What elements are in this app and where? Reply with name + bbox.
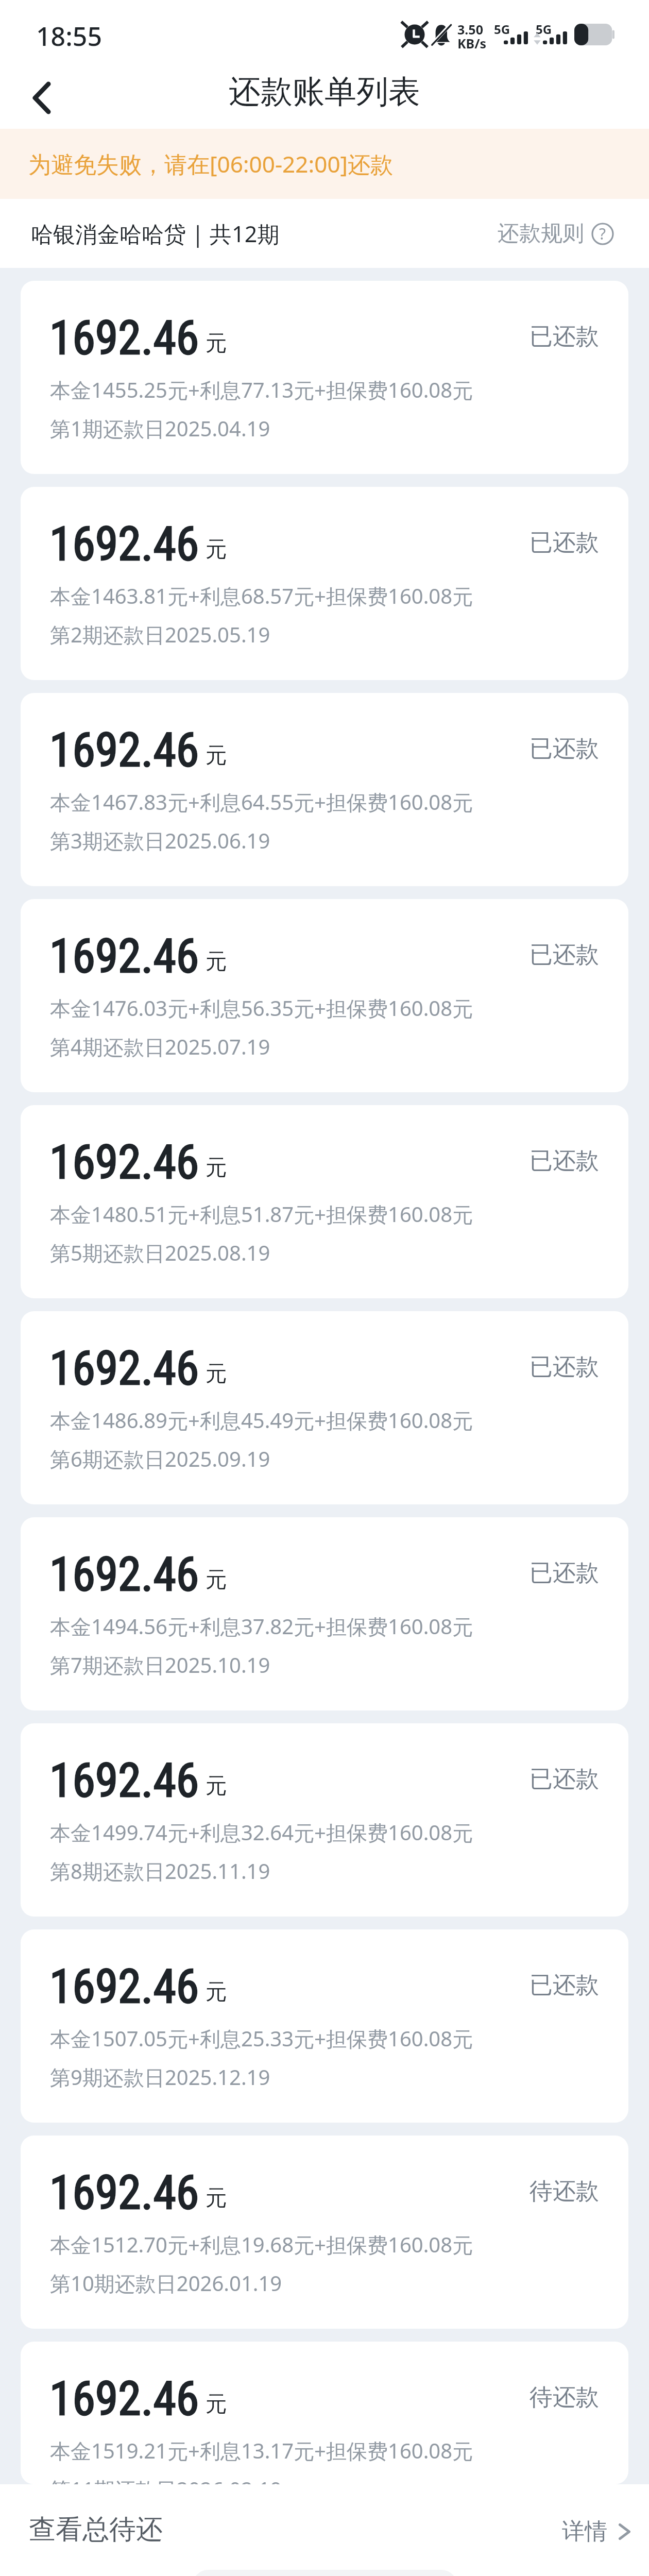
staticText: 已还款	[530, 1558, 599, 1588]
staticText: 本金1455.25元+利息77.13元+担保费160.08元	[50, 376, 473, 404]
staticText: 第8期还款日2025.11.19	[50, 1857, 270, 1885]
staticText: 已还款	[530, 1971, 599, 2000]
staticText: 本金1494.56元+利息37.82元+担保费160.08元	[50, 1612, 473, 1640]
staticText: 哈银消金哈哈贷 | 共12期	[31, 218, 280, 249]
staticText: 待还款	[530, 2177, 599, 2206]
staticText: 第3期还款日2025.06.19	[50, 826, 270, 855]
button[interactable]: 1692.46	[21, 2136, 628, 2329]
staticText: 本金1512.70元+利息19.68元+担保费160.08元	[50, 2230, 473, 2259]
staticText: 元	[206, 536, 227, 563]
staticText: 元	[206, 948, 227, 975]
staticText: 元	[206, 330, 227, 357]
staticText: 1692.46	[49, 1136, 199, 1190]
staticText: 已还款	[530, 1352, 599, 1382]
staticText: 第4期还款日2025.07.19	[50, 1032, 270, 1061]
staticText: 元	[206, 1360, 227, 1387]
button[interactable]: 1692.46	[21, 1929, 628, 2123]
staticText: ?	[599, 223, 606, 244]
staticText: 本金1507.05元+利息25.33元+担保费160.08元	[50, 2024, 473, 2053]
staticText: 1692.46	[49, 929, 199, 984]
button[interactable]: 1692.46	[21, 1517, 628, 1710]
staticText: 本金1467.83元+利息64.55元+担保费160.08元	[50, 788, 473, 816]
staticText: 第6期还款日2025.09.19	[50, 1445, 270, 1473]
button[interactable]: 1692.46	[21, 2342, 628, 2484]
button[interactable]: 1692.46	[21, 1105, 628, 1298]
button[interactable]: 1692.46	[21, 281, 628, 474]
staticText: 第9期还款日2025.12.19	[50, 2063, 270, 2091]
button[interactable]: 还款规则	[498, 220, 614, 247]
staticText: KB/s	[457, 35, 487, 52]
staticText: 还款规则	[498, 220, 584, 247]
button[interactable]: 1692.46	[21, 1311, 628, 1504]
button[interactable]: 1692.46	[21, 693, 628, 886]
button[interactable]: 1692.46	[21, 899, 628, 1092]
staticText: 5G	[494, 21, 510, 38]
staticText: 1692.46	[49, 517, 199, 571]
staticText: 第7期还款日2025.10.19	[50, 1651, 270, 1679]
staticText: 第10期还款日2026.01.19	[50, 2269, 282, 2297]
staticText: 1692.46	[49, 1548, 199, 1602]
staticText: 元	[206, 2184, 227, 2212]
staticText: 1692.46	[49, 1342, 199, 1396]
button[interactable]: 查看总待还	[21, 2507, 171, 2552]
staticText: 本金1480.51元+利息51.87元+担保费160.08元	[50, 1200, 473, 1228]
button[interactable]: Back	[19, 75, 65, 121]
staticText: 5G	[536, 21, 552, 38]
staticText: 待还款	[530, 2383, 599, 2412]
staticText: 3.50	[457, 21, 483, 38]
button[interactable]: 详情	[558, 2513, 635, 2550]
staticText: 元	[206, 1772, 227, 1800]
staticText: 元	[206, 742, 227, 769]
staticText: 本金1476.03元+利息56.35元+担保费160.08元	[50, 994, 473, 1022]
staticText: 1692.46	[49, 1960, 199, 2014]
staticText: 本金1519.21元+利息13.17元+担保费160.08元	[50, 2436, 473, 2465]
staticText: 元	[206, 1566, 227, 1594]
staticText: 本金1463.81元+利息68.57元+担保费160.08元	[50, 582, 473, 610]
staticText: 第5期还款日2025.08.19	[50, 1239, 270, 1267]
staticText: 详情	[562, 2517, 607, 2546]
staticText: 本金1499.74元+利息32.64元+担保费160.08元	[50, 1818, 473, 1846]
staticText: 第1期还款日2025.04.19	[50, 414, 270, 443]
staticText: 1692.46	[49, 723, 199, 777]
staticText: 已还款	[530, 1146, 599, 1176]
staticText: 已还款	[530, 940, 599, 970]
staticText: 元	[206, 2391, 227, 2418]
staticText: 已还款	[530, 734, 599, 764]
staticText: 1692.46	[49, 2372, 199, 2426]
staticText: 查看总待还	[29, 2513, 163, 2547]
staticText: 元	[206, 1154, 227, 1181]
staticText: 第11期还款日2026.02.19	[50, 2475, 282, 2484]
staticText: 元	[206, 1978, 227, 2006]
staticText: 为避免失败，请在[06:00-22:00]还款	[28, 148, 394, 179]
staticText: 已还款	[530, 528, 599, 557]
staticText: 已还款	[530, 322, 599, 351]
staticText: 1692.46	[49, 2166, 199, 2220]
button[interactable]: 1692.46	[21, 487, 628, 680]
staticText: 1692.46	[49, 1754, 199, 1808]
staticText: 还款账单列表	[229, 72, 420, 112]
staticText: 第2期还款日2025.05.19	[50, 620, 270, 649]
staticText: 1692.46	[49, 311, 199, 365]
staticText: 本金1486.89元+利息45.49元+担保费160.08元	[50, 1406, 473, 1434]
staticText: 18:55	[36, 19, 102, 54]
staticText: 已还款	[530, 1765, 599, 1794]
button[interactable]: 1692.46	[21, 1723, 628, 1917]
